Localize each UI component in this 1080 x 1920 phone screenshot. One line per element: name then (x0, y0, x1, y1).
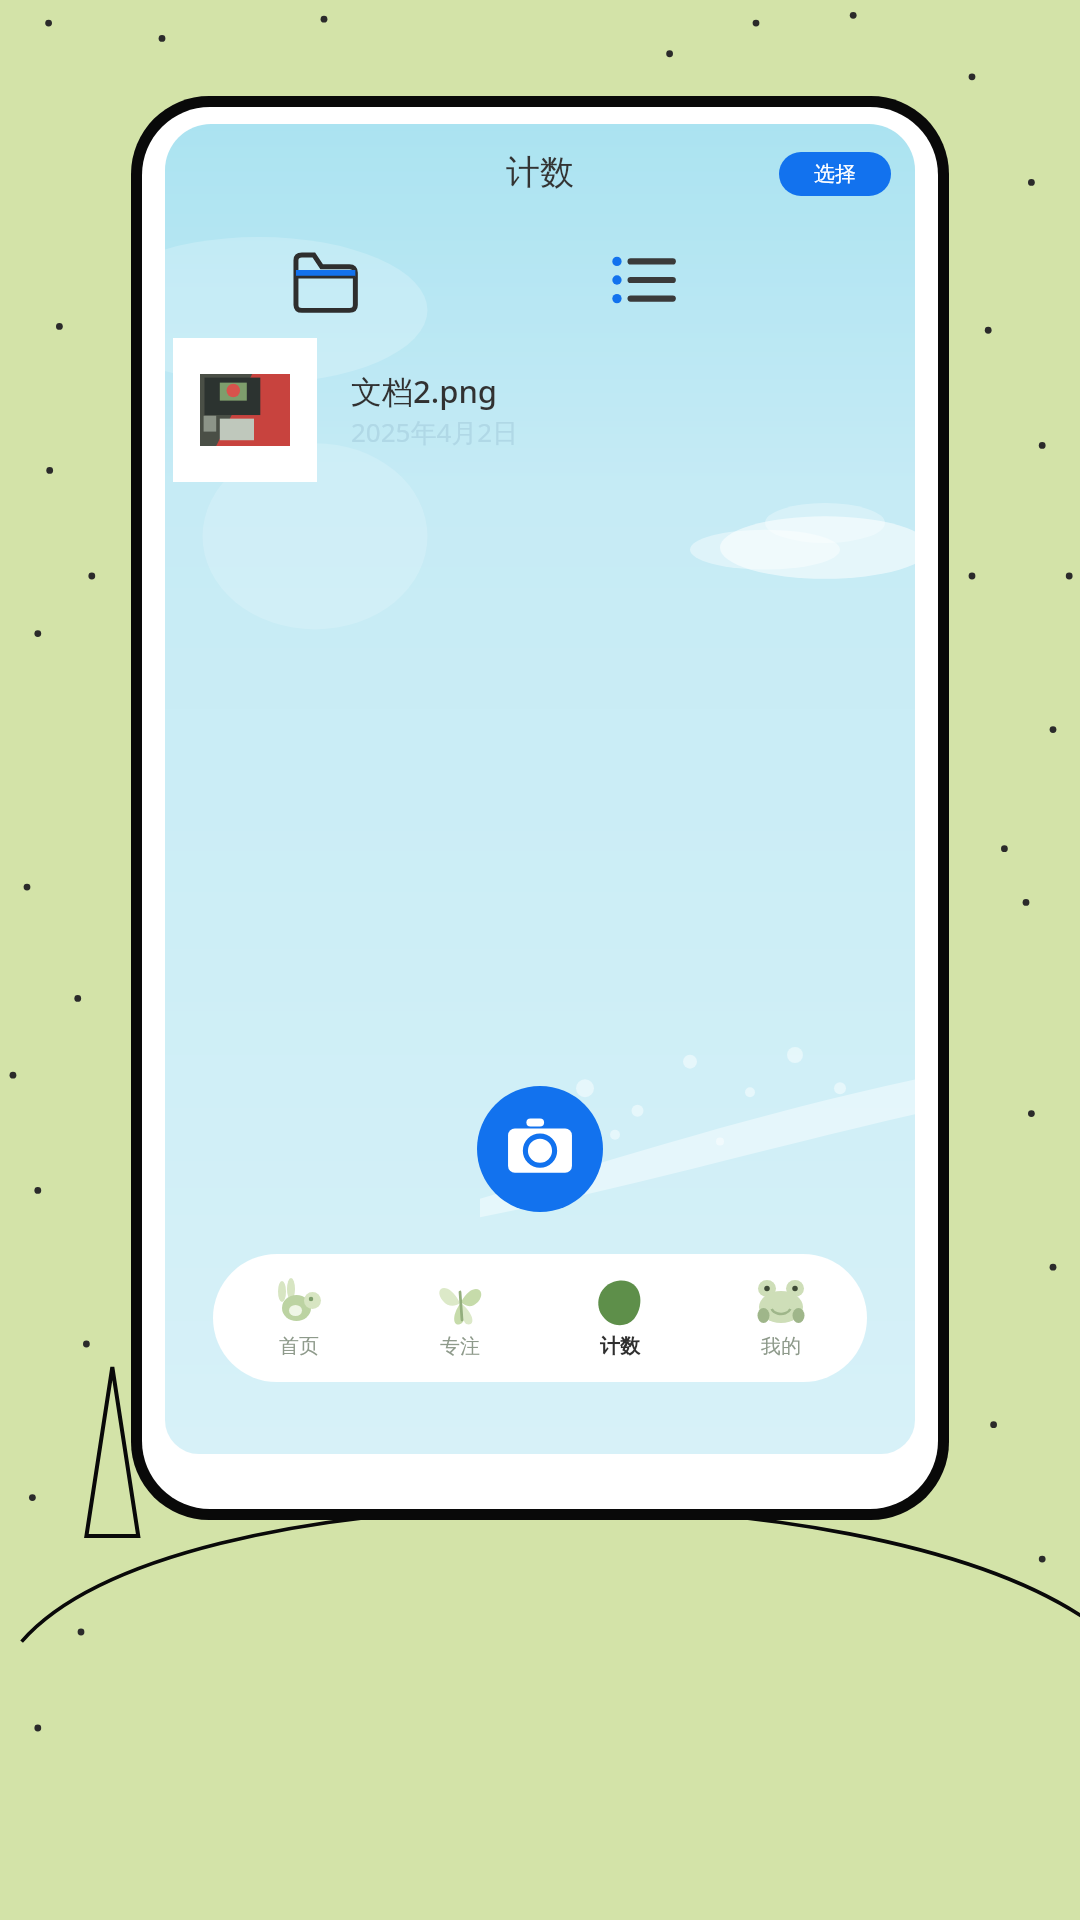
staticText: 计数 (506, 151, 574, 194)
button[interactable]: 文档2.png (173, 338, 873, 482)
staticText: 专注 (440, 1334, 480, 1359)
staticText: 选择 (814, 161, 856, 187)
button[interactable]: Folder (277, 232, 373, 328)
staticText: 我的 (761, 1334, 801, 1359)
staticText: 首页 (279, 1334, 319, 1359)
button[interactable]: 计数 (545, 1254, 695, 1382)
staticText: 文档2.png (351, 370, 498, 412)
staticText: 2025年4月2日 (351, 414, 519, 450)
button[interactable]: Take photo (477, 1086, 603, 1212)
button[interactable]: 首页 (224, 1254, 374, 1382)
staticText: 计数 (600, 1334, 640, 1359)
button[interactable]: 专注 (385, 1254, 535, 1382)
button[interactable]: List view (595, 232, 691, 328)
button[interactable]: 我的 (706, 1254, 856, 1382)
button[interactable]: 选择 (779, 152, 891, 196)
